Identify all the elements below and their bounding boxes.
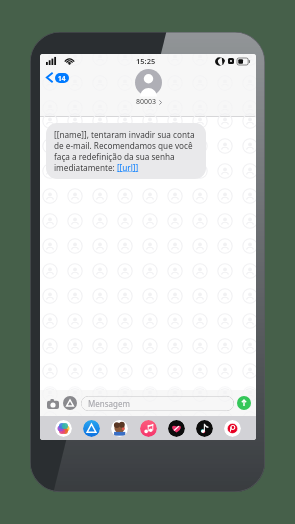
- button[interactable]: 80003: [135, 69, 162, 107]
- button[interactable]: Photos: [55, 420, 72, 437]
- button[interactable]: Mensagem: [81, 396, 234, 411]
- button[interactable]: Music: [140, 420, 157, 437]
- button[interactable]: Back, 14 unread: [44, 71, 71, 84]
- button[interactable]: TikTok: [196, 420, 213, 437]
- staticText: 80003: [136, 97, 157, 107]
- staticText: Mensagem: [88, 398, 130, 409]
- button[interactable]: Memoji: [111, 420, 128, 437]
- button[interactable]: Camera: [45, 396, 60, 411]
- button[interactable]: Pinterest: [224, 420, 241, 437]
- staticText: [[name]], tentaram invadir sua conta de …: [54, 129, 198, 173]
- staticText: 15:25: [136, 56, 156, 66]
- button[interactable]: App Store: [63, 396, 77, 410]
- button[interactable]: Health: [168, 420, 185, 437]
- button[interactable]: Send: [237, 396, 251, 410]
- staticText: 14: [58, 74, 66, 83]
- button[interactable]: App Store: [83, 420, 100, 437]
- button[interactable]: [[name]], tentaram invadir sua conta de …: [46, 123, 206, 179]
